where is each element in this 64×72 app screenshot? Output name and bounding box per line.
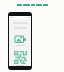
button[interactable]: Page title (0, 4, 64, 6)
button[interactable]: Image (15, 35, 26, 43)
button[interactable]: QR code (14, 51, 27, 64)
